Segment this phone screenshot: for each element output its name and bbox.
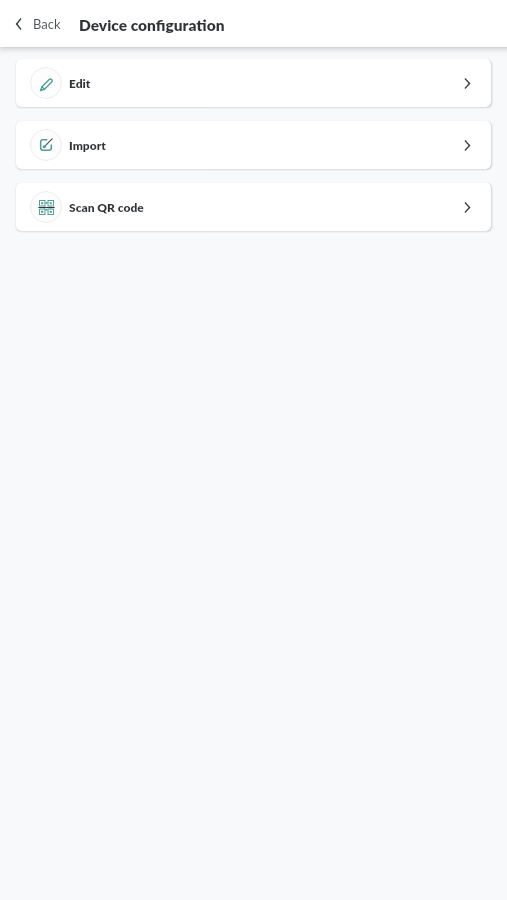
button[interactable]: Scan QR code (16, 183, 491, 231)
staticText: Scan QR code (69, 200, 144, 214)
button[interactable]: Import (16, 121, 491, 169)
staticText: Back (33, 16, 61, 32)
button[interactable]: Back (0, 8, 67, 40)
staticText: Edit (69, 76, 91, 90)
staticText: Device configuration (79, 16, 225, 35)
button[interactable]: Edit (16, 59, 491, 107)
staticText: Import (69, 138, 106, 152)
